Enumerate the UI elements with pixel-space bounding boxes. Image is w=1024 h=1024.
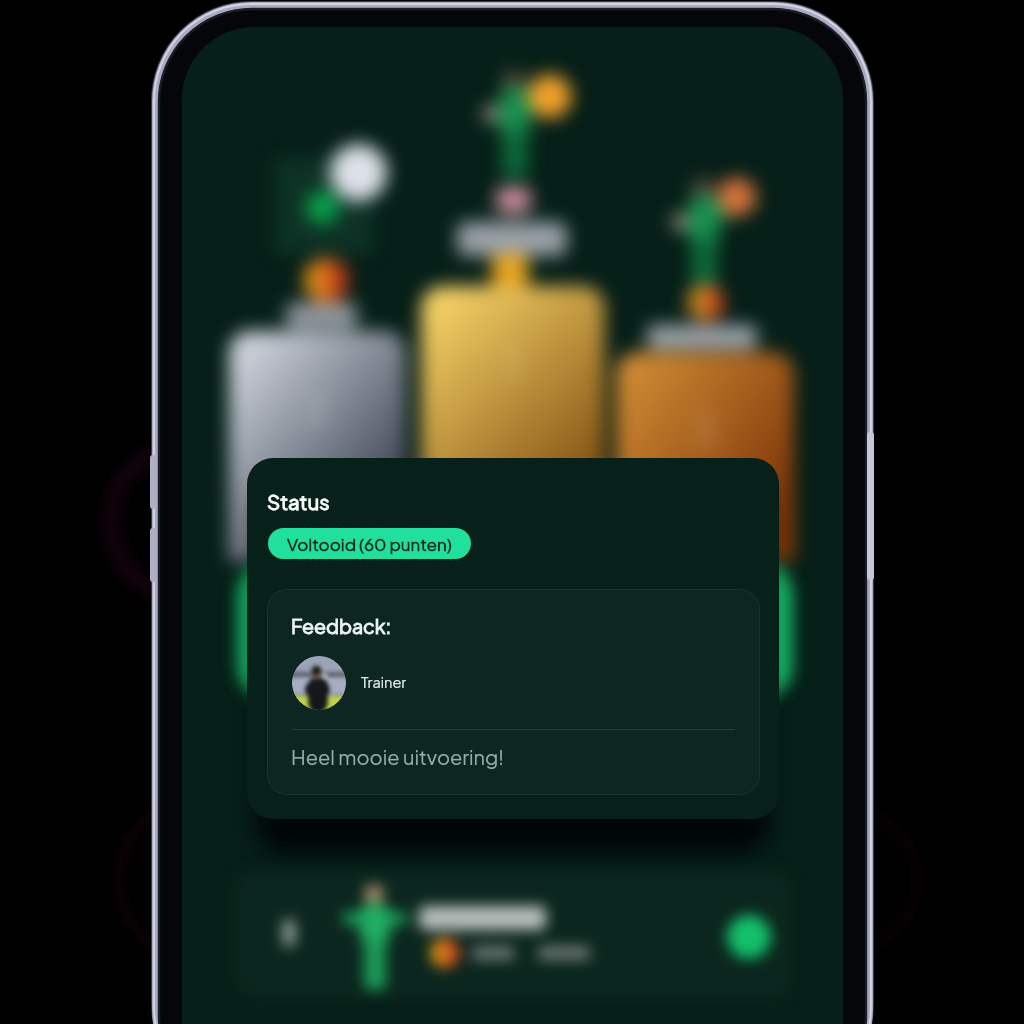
staticText: Heel mooie uitvoering! bbox=[291, 744, 504, 769]
button[interactable]: Trainer profile photo bbox=[292, 656, 346, 710]
staticText: 1 bbox=[506, 338, 521, 388]
staticText: Voltooid (60 punten) bbox=[287, 533, 452, 554]
button[interactable]: Ranglijst rij 4 bbox=[232, 869, 795, 1000]
staticText: Feedback: bbox=[291, 614, 392, 639]
staticText: 3 bbox=[693, 404, 718, 454]
staticText: Status bbox=[267, 489, 330, 515]
button[interactable]: Status bbox=[247, 458, 779, 819]
button[interactable]: Feedback: bbox=[267, 589, 760, 795]
button[interactable]: Doorgaan bbox=[238, 560, 792, 700]
staticText: Trainer bbox=[361, 673, 407, 691]
staticText: 2 bbox=[306, 383, 330, 433]
button[interactable]: Voltooid (60 punten) bbox=[268, 528, 471, 559]
